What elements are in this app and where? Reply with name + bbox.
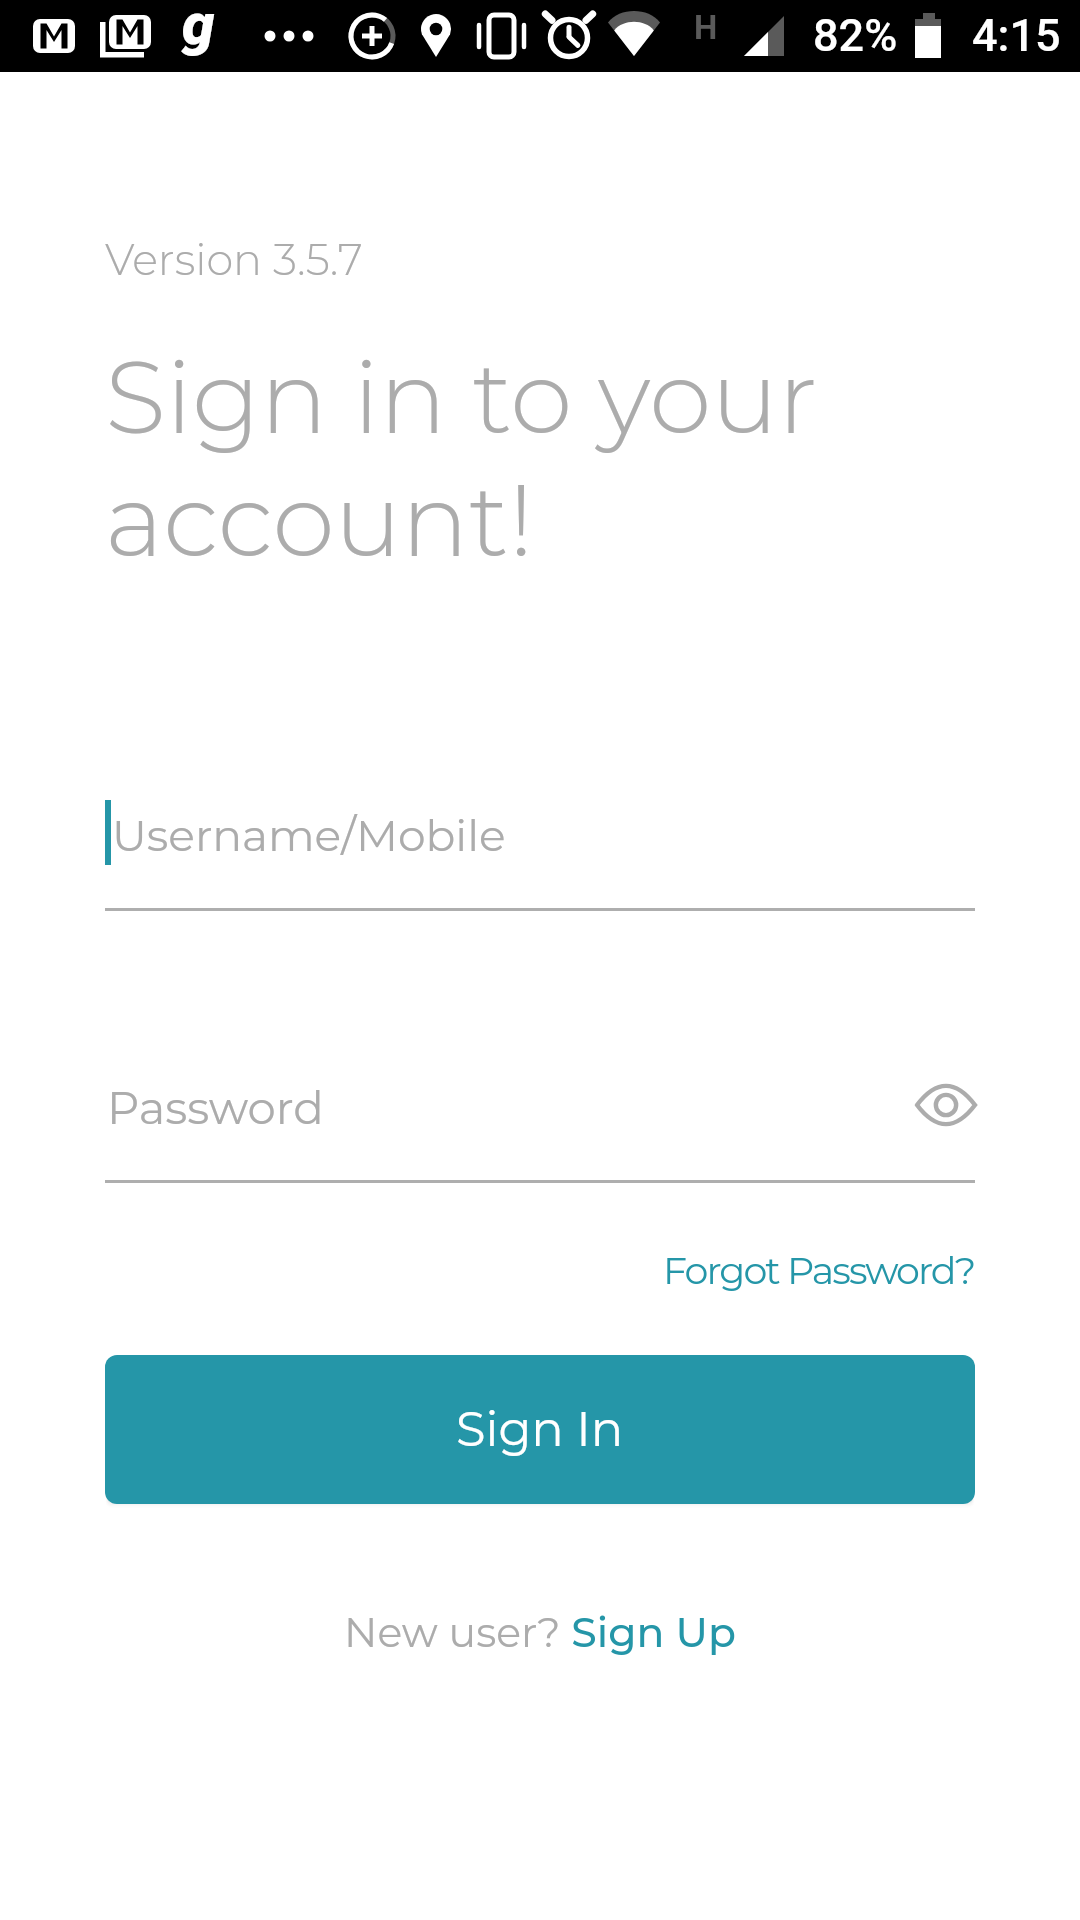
staticText: Sign In xyxy=(456,1400,624,1459)
staticText: Version 3.5.7 xyxy=(105,233,363,285)
staticText: H xyxy=(694,8,718,47)
staticText: 82% xyxy=(813,9,898,62)
staticText: Password xyxy=(107,1080,324,1135)
staticText: Username/Mobile xyxy=(112,808,506,862)
button[interactable]: Password xyxy=(105,1066,975,1183)
button[interactable]: Sign In xyxy=(105,1355,975,1504)
staticText: 4:15 xyxy=(972,9,1061,62)
staticText: Sign in to your account! xyxy=(105,336,818,582)
button[interactable]: New user? Sign Up xyxy=(0,1607,1080,1657)
staticText: g xyxy=(182,0,215,58)
button[interactable]: Show password xyxy=(917,1076,975,1134)
button[interactable]: Forgot Password? xyxy=(663,1247,975,1293)
button[interactable]: Username/Mobile xyxy=(105,790,975,911)
